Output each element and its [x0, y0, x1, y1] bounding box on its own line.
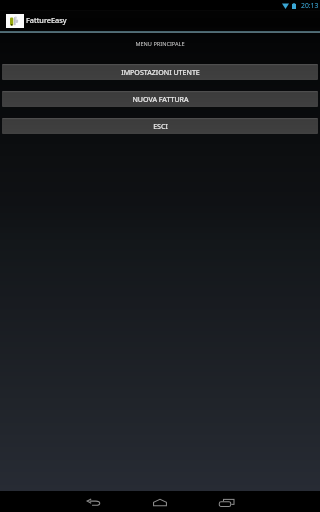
staticText: ESCI: [153, 121, 168, 131]
staticText: NUOVA FATTURA: [132, 94, 189, 104]
button[interactable]: Recent apps: [193, 491, 259, 512]
button[interactable]: NUOVA FATTURA: [2, 91, 318, 107]
staticText: IMPOSTAZIONI UTENTE: [121, 67, 200, 77]
button[interactable]: Back: [61, 491, 127, 512]
staticText: 20:13: [301, 1, 319, 10]
button[interactable]: Home: [127, 491, 193, 512]
button[interactable]: IMPOSTAZIONI UTENTE: [2, 64, 318, 80]
button[interactable]: ESCI: [2, 118, 318, 134]
staticText: FattureEasy: [26, 15, 67, 25]
staticText: MENU PRINCIPALE: [0, 40, 320, 48]
